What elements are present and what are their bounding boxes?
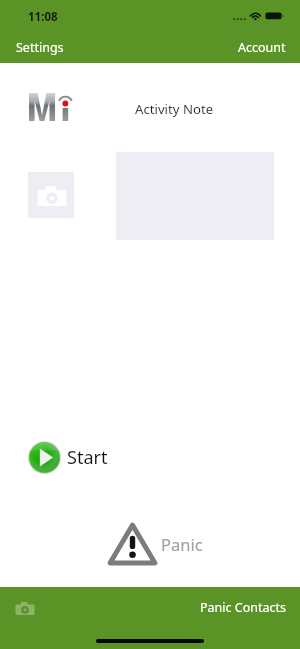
- button[interactable]: Settings: [4, 34, 76, 61]
- staticText: Start: [67, 445, 108, 470]
- button[interactable]: Camera: [12, 596, 38, 622]
- button[interactable]: Account: [226, 34, 298, 61]
- staticText: 11:08: [28, 9, 58, 25]
- staticText: Settings: [16, 39, 64, 56]
- button[interactable]: Panic Contacts: [189, 594, 297, 621]
- button[interactable]: Start: [28, 441, 108, 474]
- button[interactable]: Activity Note: [135, 100, 214, 118]
- staticText: Panic: [161, 533, 203, 555]
- button[interactable]: Add photo: [28, 172, 74, 218]
- button[interactable]: Panic: [107, 522, 203, 566]
- staticText: Account: [238, 39, 286, 56]
- staticText: Panic Contacts: [200, 599, 286, 616]
